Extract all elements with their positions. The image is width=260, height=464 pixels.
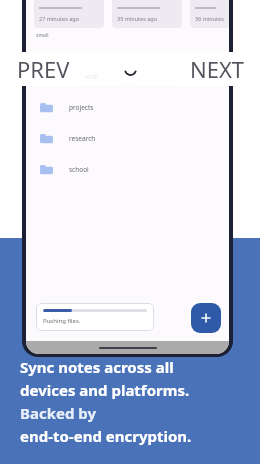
button[interactable]: 35 minutes ago: [117, 0, 177, 28]
button[interactable]: research: [26, 123, 229, 154]
button[interactable]: 27 minutes ago: [39, 0, 99, 28]
staticText: 36 minutes ago: [195, 15, 224, 22]
button[interactable]: NEXT: [174, 52, 260, 86]
button[interactable]: Loading: [118, 57, 142, 81]
staticText: school: [69, 165, 89, 174]
button[interactable]: school: [26, 154, 229, 185]
button[interactable]: 36 minutes ago: [195, 0, 224, 28]
staticText: Sync notes across all: [20, 357, 174, 377]
staticText: PREV: [17, 54, 70, 84]
staticText: Pushing files.: [43, 317, 81, 325]
staticText: NEXT: [190, 54, 245, 84]
button[interactable]: Add: [191, 303, 221, 333]
button[interactable]: projects: [26, 92, 229, 123]
button[interactable]: notebook: [26, 61, 229, 92]
button[interactable]: Pushing files.: [43, 309, 147, 325]
staticText: Backed by: [20, 403, 97, 423]
staticText: projects: [69, 103, 94, 112]
staticText: small: [36, 32, 49, 39]
staticText: research: [69, 134, 96, 143]
staticText: notebook: [69, 72, 99, 81]
staticText: end-to-end encryption.: [20, 426, 192, 446]
button[interactable]: PREV: [0, 52, 86, 86]
staticText: devices and platforms.: [20, 380, 190, 400]
staticText: 35 minutes ago: [117, 15, 158, 22]
staticText: 27 minutes ago: [39, 15, 80, 22]
